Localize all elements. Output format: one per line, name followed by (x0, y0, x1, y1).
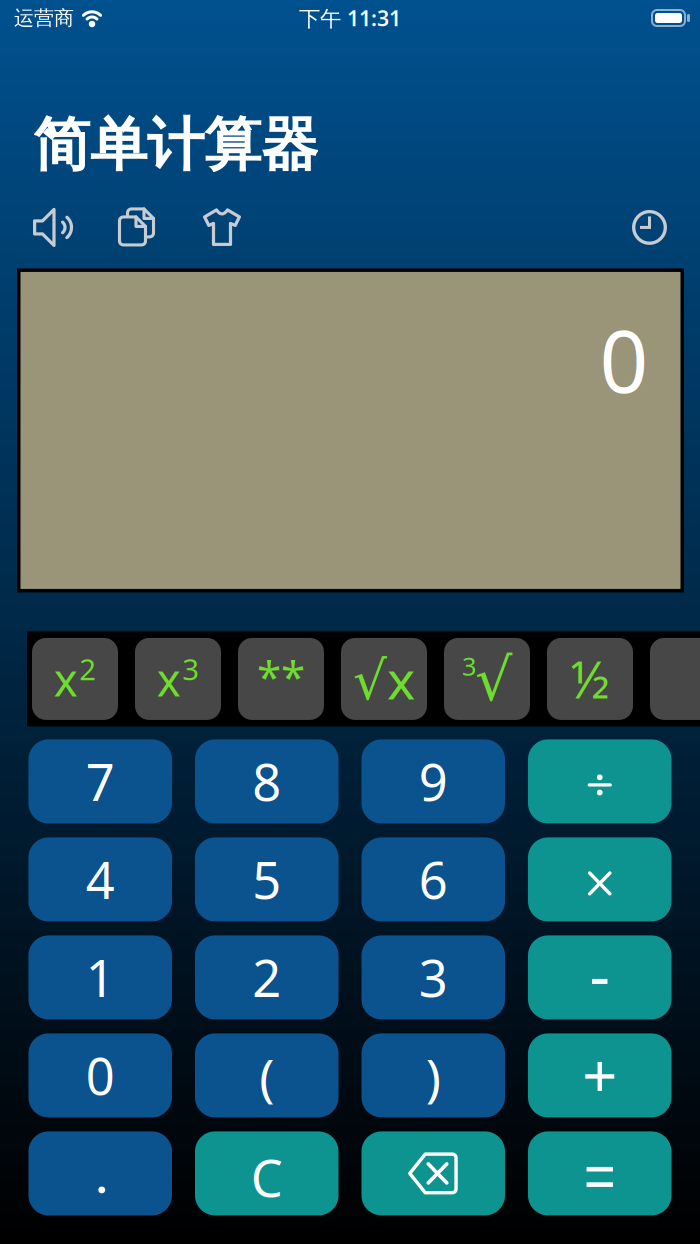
staticText: √x (353, 643, 415, 714)
staticText: 6 (419, 846, 448, 913)
staticText: 2 (252, 944, 281, 1011)
staticText: 0 (599, 303, 648, 416)
staticText: C (251, 1144, 283, 1211)
staticText: ** (257, 647, 305, 705)
button[interactable]: 6 (361, 837, 505, 921)
button[interactable]: 拷贝 (118, 207, 156, 247)
staticText: 3 (419, 944, 448, 1011)
button[interactable]: x (135, 638, 221, 720)
button[interactable]: ** (238, 638, 324, 720)
button[interactable]: 更多函数 (650, 638, 700, 720)
staticText: 7 (86, 748, 115, 815)
button[interactable]: plus (528, 1033, 671, 1117)
button[interactable]: divide (528, 739, 671, 823)
staticText: ½ (570, 645, 609, 713)
button[interactable]: x (32, 638, 118, 720)
button[interactable]: ½ (547, 638, 633, 720)
button[interactable]: 2 (195, 935, 338, 1019)
staticText: x (157, 649, 181, 709)
button[interactable]: 主题 (203, 207, 241, 247)
button[interactable]: 3 (444, 638, 530, 720)
button[interactable]: ) (361, 1033, 505, 1117)
staticText: 3 (182, 649, 199, 688)
staticText: x (54, 649, 78, 709)
staticText: 5 (252, 846, 281, 913)
button[interactable]: C (195, 1131, 338, 1215)
staticText: √ (475, 647, 512, 713)
button[interactable]: equals (528, 1131, 671, 1215)
button[interactable]: dot (28, 1131, 172, 1215)
button[interactable]: times (528, 837, 671, 921)
button[interactable]: ( (195, 1033, 338, 1117)
staticText: 下午 11:31 (299, 4, 401, 32)
button[interactable]: 5 (195, 837, 338, 921)
button[interactable]: 3 (361, 935, 505, 1019)
staticText: 4 (86, 846, 115, 913)
staticText: 3 (462, 649, 476, 683)
staticText: 9 (419, 748, 448, 815)
button[interactable]: 4 (28, 837, 172, 921)
button[interactable]: 删除 (361, 1131, 505, 1215)
button[interactable]: 7 (28, 739, 172, 823)
staticText: ( (259, 1044, 274, 1111)
button[interactable]: 8 (195, 739, 338, 823)
button[interactable]: 1 (28, 935, 172, 1019)
staticText: 0 (86, 1042, 115, 1109)
button[interactable]: √x (341, 638, 427, 720)
staticText: 8 (252, 748, 281, 815)
staticText: 1 (86, 944, 115, 1011)
button[interactable]: 0 (28, 1033, 172, 1117)
staticText: 简单计算器 (33, 110, 318, 180)
button[interactable]: 历史记录 (632, 210, 667, 245)
staticText: 运营商 (14, 6, 74, 30)
button[interactable]: minus (528, 935, 671, 1019)
button[interactable]: 朗读 (33, 206, 77, 248)
staticText: ) (426, 1044, 441, 1111)
button[interactable]: 9 (361, 739, 505, 823)
staticText: 2 (79, 649, 96, 688)
